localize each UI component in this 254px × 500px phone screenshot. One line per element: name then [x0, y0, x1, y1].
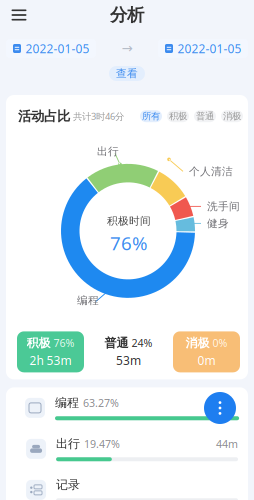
staticText: 53m	[116, 352, 141, 368]
staticText: 24%	[131, 336, 152, 350]
staticText: 共计3时46分	[70, 110, 124, 122]
staticText: 76%	[53, 336, 74, 350]
staticText: 19.47%	[84, 437, 120, 451]
staticText: 积极时间	[107, 214, 151, 227]
staticText: 普通	[196, 110, 214, 122]
button[interactable]: 查看	[109, 66, 145, 81]
button[interactable]: 所有	[140, 110, 162, 122]
staticText: 63.27%	[83, 396, 119, 410]
staticText: 2022-01-05	[177, 40, 241, 56]
button[interactable]: 2022-01-05	[6, 39, 96, 58]
staticText: 记录	[56, 477, 80, 492]
button[interactable]: Menu	[4, 2, 34, 28]
staticText: 0m	[197, 352, 215, 368]
staticText: 积极	[26, 335, 50, 350]
staticText: 活动占比	[18, 108, 70, 124]
staticText: 所有	[142, 110, 160, 122]
staticText: 2h 53m	[29, 352, 71, 368]
staticText: 44m	[216, 437, 238, 451]
staticText: 出行	[56, 436, 80, 451]
button[interactable]: 2022-01-05	[158, 39, 248, 58]
staticText: 个人清洁	[189, 165, 233, 178]
staticText: 76%	[110, 230, 148, 255]
button[interactable]: More options	[204, 392, 236, 424]
staticText: 0%	[212, 336, 227, 350]
button[interactable]: 积极	[167, 110, 189, 122]
staticText: 消极	[223, 110, 241, 122]
button[interactable]: 记录	[7, 469, 249, 500]
staticText: 积极	[169, 110, 187, 122]
staticText: →	[121, 41, 132, 56]
staticText: 2022-01-05	[25, 40, 89, 56]
staticText: 出行	[97, 145, 119, 158]
button[interactable]: 消极	[221, 110, 243, 122]
button[interactable]: 出行	[7, 428, 249, 469]
staticText: 洗手间	[207, 200, 240, 213]
staticText: 编程	[55, 395, 79, 410]
staticText: 分析	[110, 4, 144, 26]
staticText: 编程	[77, 294, 99, 307]
staticText: 查看	[116, 67, 138, 80]
button[interactable]: 编程	[6, 387, 250, 428]
staticText: 消极	[185, 335, 209, 350]
button[interactable]: 普通	[194, 110, 216, 122]
staticText: 普通	[104, 335, 128, 350]
staticText: 健身	[207, 217, 229, 230]
